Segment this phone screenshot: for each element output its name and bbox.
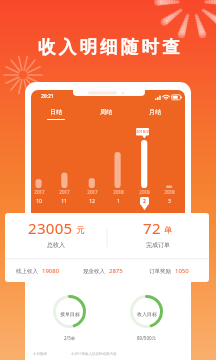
staticText: 1 (117, 198, 120, 205)
staticText: 2 (143, 198, 146, 205)
staticText: 总收入 (47, 241, 65, 249)
staticText: 收入目标 (137, 311, 157, 317)
staticText: 2017 (34, 189, 45, 195)
button[interactable]: 订单奖励 (136, 267, 202, 275)
staticText: 10 (36, 198, 42, 205)
staticText: 23005 (28, 218, 73, 238)
button[interactable]: 线上收入 (5, 267, 70, 275)
button[interactable]: 月结 (130, 100, 179, 120)
staticText: 2018/2 (136, 129, 149, 134)
staticText: 2018 (113, 189, 124, 195)
button[interactable]: 周结 (81, 100, 130, 120)
staticText: 完成订单 (146, 241, 170, 249)
staticText: 元 (76, 225, 85, 236)
staticText: 20:21 (41, 93, 54, 100)
staticText: 今日数据 (33, 352, 47, 356)
staticText: 日结 (50, 108, 62, 116)
button[interactable]: 现金收入 (70, 267, 136, 275)
staticText: 2/5单 (64, 335, 76, 341)
staticText: 2018 (139, 189, 150, 195)
button[interactable]: 72 (107, 213, 209, 258)
staticText: 72 (143, 218, 161, 238)
staticText: 今日订单收入以实际结算为准 (71, 352, 117, 356)
staticText: 19080 (42, 267, 60, 275)
staticText: 周结 (100, 108, 112, 116)
staticText: 11 (61, 198, 67, 205)
staticText: 2017 (87, 189, 98, 195)
staticText: 订单奖励 (149, 268, 171, 275)
staticText: 月结 (149, 108, 161, 116)
staticText: 2017 (59, 189, 70, 195)
staticText: 接单目标 (60, 311, 80, 317)
staticText: 12 (89, 198, 95, 205)
button[interactable]: 收入目标 (108, 288, 185, 350)
staticText: 3 (168, 198, 171, 205)
staticText: 收入明细随时查 (38, 36, 183, 58)
button[interactable]: 23005 (5, 213, 107, 258)
staticText: 2875 (109, 267, 123, 275)
staticText: 线上收入 (16, 268, 38, 275)
staticText: 1050 (175, 267, 189, 275)
staticText: 单 (164, 225, 173, 236)
staticText: 现金收入 (83, 268, 105, 275)
button[interactable]: 日结 (31, 100, 81, 120)
button[interactable]: 接单目标 (31, 288, 108, 350)
staticText: 2018 (164, 189, 175, 195)
staticText: 80/500元 (137, 335, 157, 341)
